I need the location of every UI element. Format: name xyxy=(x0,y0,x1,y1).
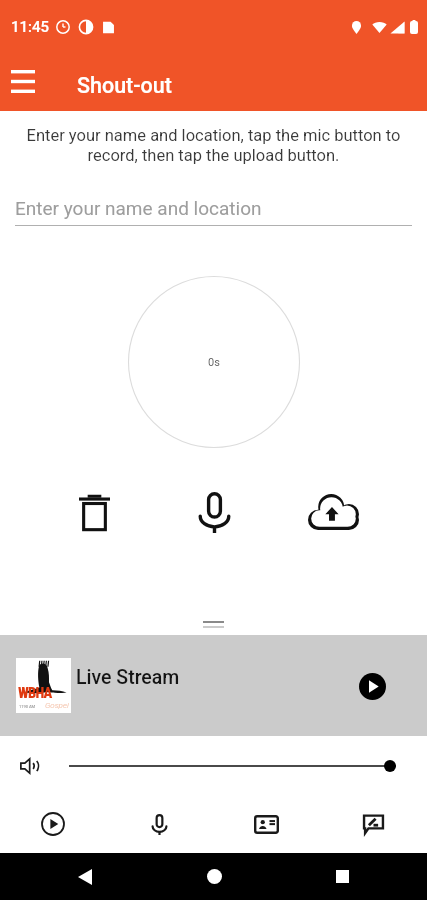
button[interactable]: Listen xyxy=(0,795,106,853)
button[interactable]: Record xyxy=(183,482,246,542)
button[interactable]: Feedback xyxy=(320,795,427,853)
button[interactable]: Delete recording xyxy=(63,482,126,542)
staticText: 0s xyxy=(208,356,220,369)
staticText: Gospel xyxy=(45,701,69,710)
staticText: 11:45 xyxy=(11,18,50,36)
button[interactable]: Contact xyxy=(213,795,320,853)
button[interactable]: Open navigation menu xyxy=(1,59,45,103)
staticText: Enter your name and location xyxy=(15,197,262,219)
button[interactable]: Upload recording xyxy=(302,482,365,542)
staticText: Live Stream xyxy=(76,666,180,689)
staticText: Shout-out xyxy=(77,73,172,98)
button[interactable]: Record shout-out xyxy=(106,795,213,853)
staticText: Enter your name and location, tap the mi… xyxy=(18,126,409,165)
button[interactable]: Play live stream xyxy=(350,664,394,708)
staticText: WBHA xyxy=(18,685,52,702)
staticText: 1190 AM xyxy=(19,704,36,709)
